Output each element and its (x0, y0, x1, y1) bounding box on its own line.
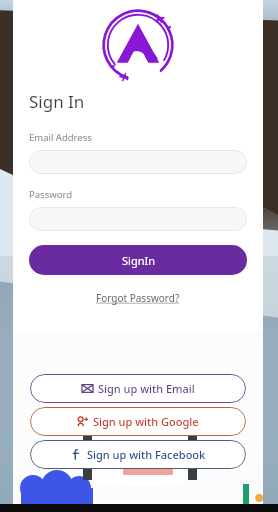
button[interactable]: Forgot Password? (92, 287, 184, 309)
staticText: Sign up with Email (98, 381, 195, 396)
staticText: Sign up with Facebook (87, 447, 206, 462)
button[interactable]: SignIn (29, 245, 247, 275)
staticText: Sign In (29, 90, 85, 113)
staticText: SignIn (122, 253, 155, 268)
button[interactable]: Sign up with Email (30, 374, 246, 403)
staticText: Password (29, 188, 72, 201)
button[interactable]: Sign up with Google (30, 407, 246, 436)
button[interactable] (29, 150, 247, 174)
button[interactable] (29, 207, 247, 231)
staticText: Forgot Password? (96, 291, 180, 305)
button[interactable]: Sign up with Facebook (30, 440, 246, 469)
staticText: Sign up with Google (93, 414, 199, 429)
staticText: Email Address (29, 131, 92, 144)
